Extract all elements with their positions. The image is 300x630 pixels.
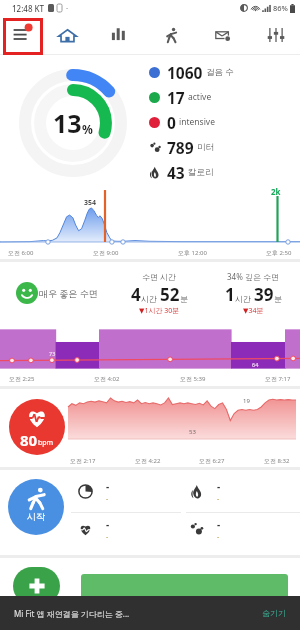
staticText: 오전 7:17 xyxy=(265,375,291,383)
staticText: 80 xyxy=(20,430,38,450)
staticText: 13 xyxy=(53,106,82,140)
staticText: 354 xyxy=(84,198,97,208)
staticText: 걸음 수 xyxy=(206,66,234,78)
staticText: 오전 2:25 xyxy=(9,375,35,383)
staticText: - xyxy=(217,494,220,504)
button[interactable]: Messages xyxy=(200,16,250,54)
button[interactable]: Start workout xyxy=(8,479,64,535)
staticText: % xyxy=(82,121,93,137)
staticText: 43 xyxy=(167,162,185,183)
staticText: 오전 4:22 xyxy=(135,457,161,465)
staticText: bpm xyxy=(38,438,54,448)
staticText: 시간 xyxy=(235,293,254,304)
staticText: 칼로리 xyxy=(188,167,214,178)
staticText: 19 xyxy=(243,397,250,405)
staticText: 오전 9:00 xyxy=(93,249,119,257)
staticText: 오전 6:27 xyxy=(199,457,225,465)
staticText: Mi Fit 앱 재연결을 기다리는 중... xyxy=(14,608,130,619)
staticText: 64 xyxy=(252,361,259,368)
staticText: 매우 좋은 수면 xyxy=(39,287,98,299)
staticText: 52 xyxy=(160,283,180,306)
staticText: 39 xyxy=(254,283,274,306)
staticText: 분 xyxy=(180,294,188,304)
staticText: 오전 2:17 xyxy=(70,457,96,465)
button[interactable]: Menu xyxy=(0,16,50,54)
staticText: 오전 8:32 xyxy=(264,457,290,465)
staticText: 미터 xyxy=(197,142,214,153)
button[interactable]: Statistics xyxy=(100,16,150,54)
staticText: 시작 xyxy=(27,511,45,522)
staticText: 수면 시간 xyxy=(142,271,177,282)
staticText: 53 xyxy=(189,428,196,436)
staticText: 17 xyxy=(167,87,185,108)
staticText: - xyxy=(217,479,221,493)
staticText: 789 xyxy=(167,137,194,158)
staticText: - xyxy=(66,3,69,13)
staticText: 73 xyxy=(49,350,56,357)
staticText: 시간 xyxy=(141,293,160,304)
staticText: 오후 2:50 xyxy=(266,249,292,257)
staticText: 숨기기 xyxy=(262,608,286,618)
staticText: 34% 깊은 수면 xyxy=(227,271,279,282)
staticText: 오전 4:02 xyxy=(94,375,120,383)
staticText: - xyxy=(217,517,221,531)
staticText: 0 xyxy=(167,112,176,133)
staticText: ▼34분 xyxy=(243,306,264,316)
staticText: intensive xyxy=(179,116,215,128)
staticText: 86% xyxy=(273,3,288,13)
staticText: 오전 6:00 xyxy=(8,249,34,257)
staticText: 오후 12:00 xyxy=(178,249,207,257)
staticText: - xyxy=(106,532,109,542)
staticText: 분 xyxy=(274,294,282,304)
button[interactable]: Settings xyxy=(250,16,300,54)
staticText: - xyxy=(106,494,109,504)
staticText: 2k xyxy=(271,186,281,197)
staticText: - xyxy=(106,517,110,531)
staticText: 1060 xyxy=(167,62,203,83)
staticText: - xyxy=(106,479,110,493)
staticText: 12:48 KT xyxy=(12,3,45,14)
button[interactable]: Add record xyxy=(13,567,60,605)
staticText: active xyxy=(188,91,212,103)
staticText: - xyxy=(217,532,220,542)
staticText: 4 xyxy=(131,283,141,306)
button[interactable]: Home xyxy=(50,16,100,54)
staticText: 오전 5:39 xyxy=(180,375,206,383)
staticText: ▼1시간 30분 xyxy=(139,306,180,316)
staticText: 1 xyxy=(225,283,235,306)
button[interactable]: Workout xyxy=(150,16,200,54)
